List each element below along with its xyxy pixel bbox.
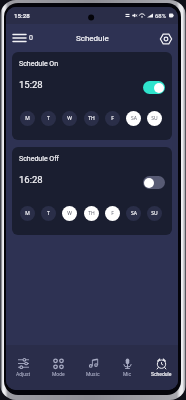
button[interactable]: Mode	[41, 345, 76, 390]
staticText: F	[111, 115, 114, 122]
staticText: T	[47, 115, 50, 122]
staticText: M	[25, 115, 30, 122]
button[interactable]: Schedule disabled	[143, 176, 165, 189]
staticText: Mode	[52, 371, 65, 377]
staticText: Schedule On	[19, 60, 59, 68]
button[interactable]: Settings	[158, 31, 173, 46]
button[interactable]: TH	[84, 206, 99, 221]
staticText: SU	[151, 115, 158, 122]
staticText: SA	[131, 210, 137, 217]
staticText: 15:28	[19, 79, 43, 90]
staticText: 68%	[155, 12, 167, 19]
button[interactable]: Schedule Off	[12, 147, 172, 235]
button[interactable]: SA	[126, 111, 141, 126]
staticText: F	[111, 210, 114, 217]
other: Menu	[13, 33, 26, 43]
button[interactable]: SU	[147, 111, 162, 126]
staticText: Schedule	[76, 34, 109, 43]
staticText: Schedule	[151, 371, 172, 377]
button[interactable]: Mic	[110, 345, 144, 390]
staticText: T	[47, 210, 50, 217]
button[interactable]: Menu	[10, 30, 36, 46]
staticText: W	[67, 115, 72, 122]
button[interactable]: M	[20, 206, 35, 221]
button[interactable]: Schedule enabled	[143, 81, 165, 94]
staticText: M	[25, 210, 30, 217]
button[interactable]: Schedule	[144, 345, 178, 390]
button[interactable]: W	[62, 206, 77, 221]
staticText: Schedule Off	[19, 155, 60, 163]
button[interactable]: F	[105, 111, 120, 126]
staticText: 16:28	[19, 174, 43, 185]
staticText: SA	[131, 115, 137, 122]
staticText: Adjust	[16, 371, 31, 377]
button[interactable]: Schedule On	[12, 52, 172, 140]
button[interactable]: SU	[147, 206, 162, 221]
staticText: 0	[29, 34, 33, 42]
button[interactable]: T	[41, 206, 56, 221]
button[interactable]: M	[20, 111, 35, 126]
staticText: Music	[86, 371, 100, 377]
button[interactable]: T	[41, 111, 56, 126]
staticText: Mic	[123, 371, 132, 377]
button[interactable]: W	[62, 111, 77, 126]
button[interactable]: Music	[76, 345, 110, 390]
staticText: TH	[88, 210, 95, 217]
staticText: SU	[151, 210, 158, 217]
staticText: TH	[88, 115, 95, 122]
staticText: 15:28	[14, 12, 30, 19]
button[interactable]: F	[105, 206, 120, 221]
button[interactable]: Adjust	[6, 345, 41, 390]
button[interactable]: TH	[84, 111, 99, 126]
staticText: W	[67, 210, 72, 217]
button[interactable]: SA	[126, 206, 141, 221]
